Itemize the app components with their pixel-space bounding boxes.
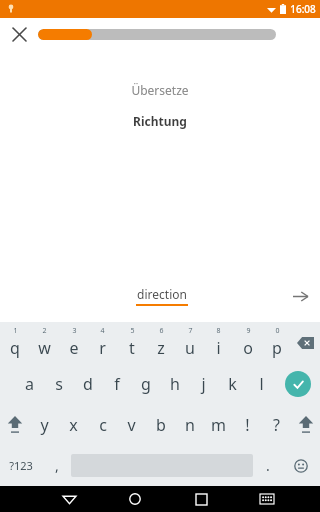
- staticText: w: [38, 337, 51, 359]
- staticText: k: [228, 373, 237, 395]
- button[interactable]: .: [253, 445, 282, 486]
- staticText: g: [141, 373, 151, 395]
- staticText: ?: [273, 414, 280, 436]
- staticText: !: [245, 414, 250, 436]
- button[interactable]: 1: [0, 322, 30, 363]
- button[interactable]: ?: [262, 404, 291, 445]
- button[interactable]: l: [247, 363, 276, 404]
- button[interactable]: Keyboard: [234, 486, 300, 512]
- staticText: 8: [216, 326, 221, 336]
- button[interactable]: x: [59, 404, 88, 445]
- staticText: x: [69, 414, 78, 436]
- staticText: Übersetze: [131, 82, 189, 98]
- button[interactable]: Close: [0, 18, 38, 50]
- button[interactable]: y: [30, 404, 59, 445]
- staticText: o: [243, 337, 253, 359]
- button[interactable]: n: [175, 404, 204, 445]
- button[interactable]: 2: [30, 322, 59, 363]
- button[interactable]: Enter: [276, 363, 320, 404]
- button[interactable]: d: [73, 363, 102, 404]
- staticText: j: [201, 373, 206, 395]
- staticText: m: [211, 414, 226, 436]
- staticText: Richtung: [133, 113, 187, 129]
- staticText: 3: [72, 326, 77, 336]
- button[interactable]: s: [44, 363, 73, 404]
- staticText: n: [185, 414, 195, 436]
- button[interactable]: 9: [233, 322, 262, 363]
- button[interactable]: Next: [280, 276, 320, 316]
- staticText: 2: [42, 326, 47, 336]
- staticText: 4: [100, 326, 105, 336]
- staticText: r: [99, 337, 106, 359]
- staticText: v: [127, 414, 136, 436]
- button[interactable]: !: [233, 404, 262, 445]
- button[interactable]: c: [88, 404, 117, 445]
- button[interactable]: k: [218, 363, 247, 404]
- button[interactable]: 7: [175, 322, 204, 363]
- button[interactable]: Back: [36, 486, 102, 512]
- button[interactable]: 0: [262, 322, 291, 363]
- staticText: 7: [188, 326, 193, 336]
- button[interactable]: 6: [146, 322, 175, 363]
- button[interactable]: Home: [102, 486, 168, 512]
- staticText: c: [99, 414, 107, 436]
- staticText: f: [114, 373, 120, 395]
- button[interactable]: h: [160, 363, 189, 404]
- staticText: 6: [159, 326, 164, 336]
- staticText: l: [259, 373, 264, 395]
- button[interactable]: m: [204, 404, 233, 445]
- button[interactable]: Shift: [0, 404, 30, 445]
- staticText: .: [266, 456, 270, 475]
- button[interactable]: Backspace: [291, 322, 320, 363]
- button[interactable]: v: [117, 404, 146, 445]
- button[interactable]: 5: [117, 322, 146, 363]
- button[interactable]: Emoji: [282, 445, 320, 486]
- button[interactable]: j: [189, 363, 218, 404]
- staticText: ,: [55, 456, 59, 475]
- button[interactable]: Shift: [291, 404, 320, 445]
- staticText: 0: [275, 326, 280, 336]
- staticText: u: [185, 337, 195, 359]
- staticText: 1: [13, 326, 18, 336]
- staticText: 5: [130, 326, 135, 336]
- button[interactable]: ,: [42, 445, 71, 486]
- staticText: ?123: [9, 458, 33, 473]
- button[interactable]: f: [102, 363, 131, 404]
- staticText: p: [272, 337, 282, 359]
- button[interactable]: [38, 29, 276, 40]
- staticText: t: [129, 337, 135, 359]
- staticText: direction: [137, 286, 187, 302]
- button[interactable]: Recent apps: [168, 486, 234, 512]
- button[interactable]: a: [15, 363, 44, 404]
- button[interactable]: direction: [44, 286, 280, 306]
- staticText: i: [216, 337, 221, 359]
- staticText: y: [40, 414, 49, 436]
- button[interactable]: g: [131, 363, 160, 404]
- staticText: e: [69, 337, 79, 359]
- button[interactable]: 4: [88, 322, 117, 363]
- button[interactable]: ?123: [0, 445, 42, 486]
- button[interactable]: 8: [204, 322, 233, 363]
- staticText: q: [10, 337, 20, 359]
- staticText: 16:08: [290, 2, 316, 16]
- staticText: h: [170, 373, 180, 395]
- button[interactable]: b: [146, 404, 175, 445]
- staticText: d: [83, 373, 93, 395]
- staticText: 9: [246, 326, 251, 336]
- staticText: s: [55, 373, 63, 395]
- staticText: z: [157, 337, 165, 359]
- staticText: a: [25, 373, 34, 395]
- button[interactable]: 3: [59, 322, 88, 363]
- staticText: b: [156, 414, 166, 436]
